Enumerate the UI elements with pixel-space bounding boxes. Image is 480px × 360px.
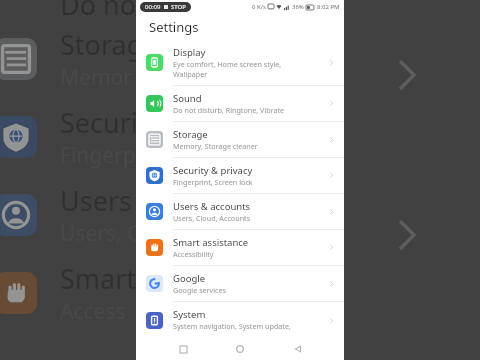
button[interactable]: Recent apps [172, 338, 194, 360]
staticText: 0 K/s [252, 3, 266, 11]
staticText: System navigation, System update, [173, 321, 291, 331]
staticText: 00:09 [145, 3, 161, 11]
staticText: Users, Cloud, Accounts [173, 213, 251, 223]
button[interactable]: Sound [136, 86, 344, 121]
staticText: Users [60, 182, 132, 219]
staticText: Settings [149, 18, 199, 36]
staticText: Users & accounts [173, 200, 251, 213]
button[interactable]: Smart assistance [136, 230, 344, 265]
staticText: Users, C [60, 219, 141, 248]
staticText: Google [173, 272, 206, 285]
staticText: Wallpaper [173, 69, 208, 79]
staticText: Sound [173, 92, 202, 105]
staticText: Memory, Storage cleaner [173, 141, 258, 151]
button[interactable]: Home [229, 338, 251, 360]
staticText: Do not [60, 0, 146, 20]
staticText: Google services [173, 285, 227, 295]
staticText: Accessibility [173, 249, 214, 259]
staticText: 8:02 PM [317, 3, 340, 11]
staticText: Smart assistance [173, 236, 249, 249]
button[interactable]: Stop screen recording [145, 3, 186, 11]
staticText: Security & privacy [173, 164, 253, 177]
staticText: Storage [173, 128, 208, 141]
staticText: System [173, 308, 206, 321]
button[interactable]: Google [136, 266, 344, 301]
staticText: 36% [292, 3, 304, 11]
staticText: Fingerprint, Screen lock [173, 177, 253, 187]
staticText: Display [173, 46, 206, 59]
button[interactable]: Display [136, 40, 344, 85]
button[interactable]: Storage [136, 122, 344, 157]
staticText: Do not disturb, Ringtone, Vibrate [173, 105, 285, 115]
staticText: Storag [60, 26, 144, 63]
staticText: STOP [171, 3, 186, 11]
staticText: Eye comfort, Home screen style, [173, 59, 282, 69]
button[interactable]: Security & privacy [136, 158, 344, 193]
button[interactable]: System [136, 302, 344, 338]
button[interactable]: Back [287, 338, 309, 360]
staticText: Securi [60, 104, 138, 141]
staticText: Smart [60, 260, 137, 297]
button[interactable]: Users & accounts [136, 194, 344, 229]
